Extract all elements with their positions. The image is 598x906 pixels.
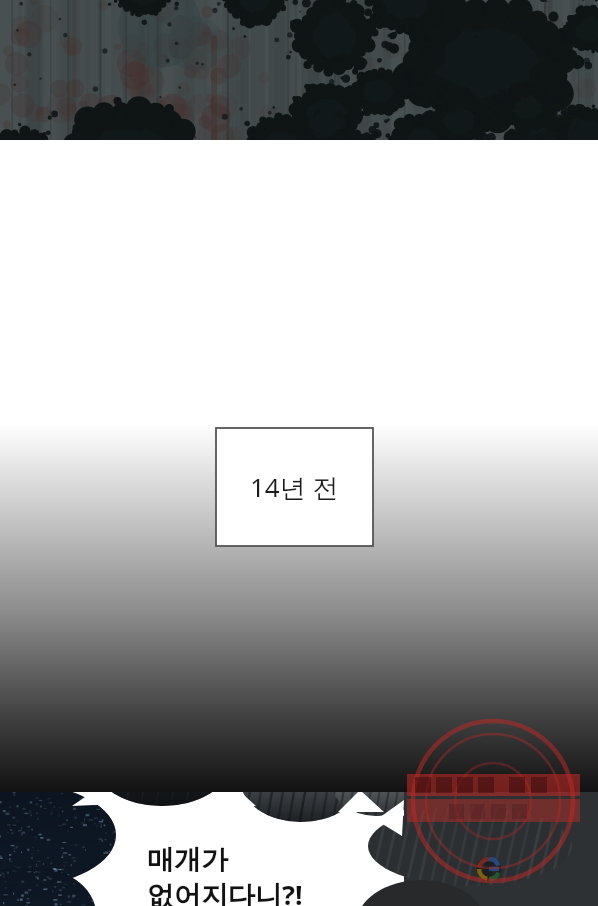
staticText: 매개가 없어지다니?! [147,843,303,906]
staticText: 14년 전 [250,469,339,505]
button[interactable]: 14년 전 [216,428,373,546]
